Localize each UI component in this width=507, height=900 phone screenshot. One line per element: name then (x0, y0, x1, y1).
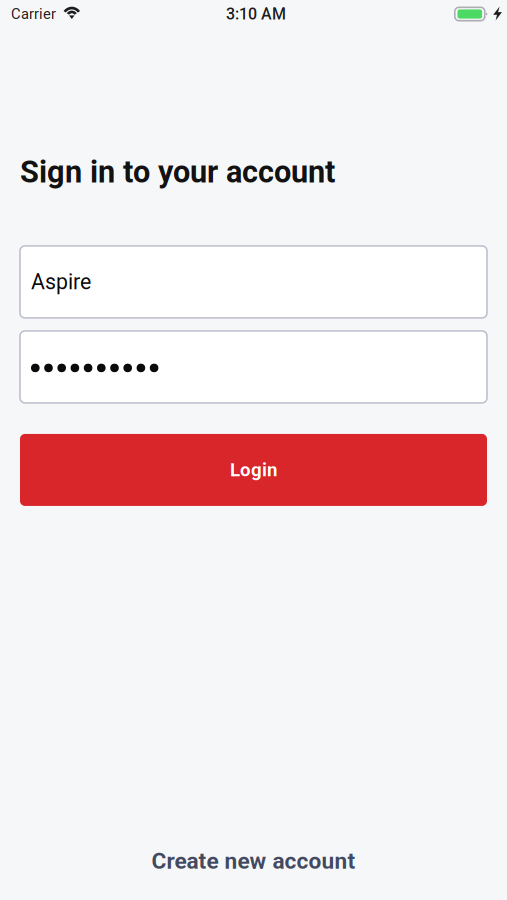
button[interactable]: Create new account (151, 839, 355, 883)
secureTextField[interactable]: •••••••••• (20, 331, 487, 403)
button[interactable]: Login (20, 434, 487, 506)
staticText: Aspire (31, 269, 91, 294)
button[interactable]: Password (20, 331, 487, 403)
staticText: Login (230, 459, 277, 481)
staticText: Sign in to your account (20, 154, 335, 190)
staticText: Create new account (151, 848, 355, 874)
staticText: 3:10 AM (226, 5, 286, 23)
textField[interactable]: Aspire (20, 246, 487, 318)
button[interactable]: Username (20, 246, 487, 318)
staticText: Carrier (11, 5, 56, 23)
